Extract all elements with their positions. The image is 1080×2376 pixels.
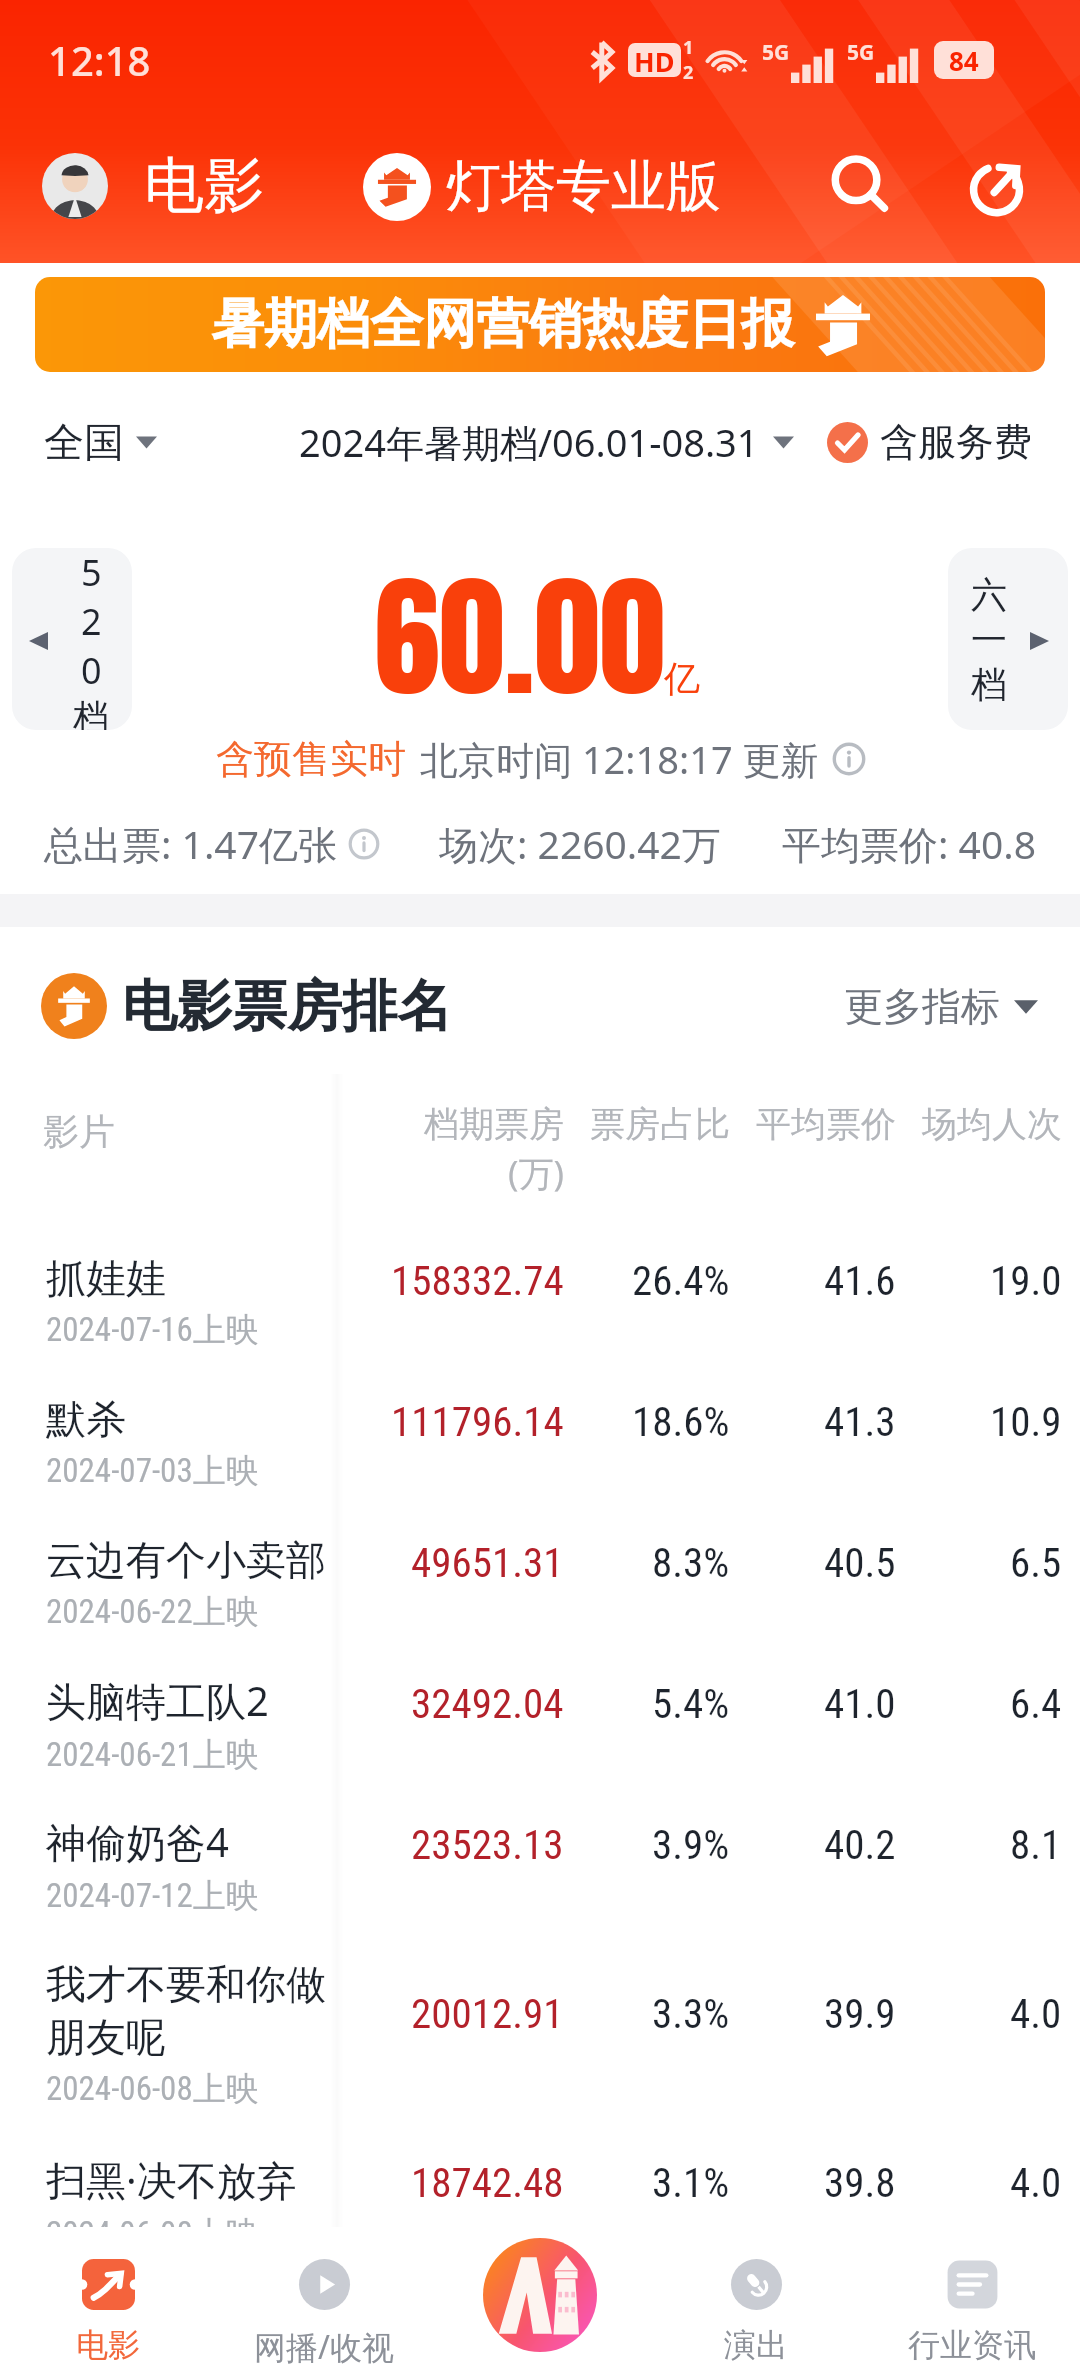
staticText: 60.00	[374, 538, 666, 737]
button[interactable]: 电影	[42, 142, 264, 230]
button[interactable]: 电影	[0, 2227, 216, 2376]
staticText: 18742.48	[411, 2159, 564, 2207]
staticText: 4.0	[1010, 2159, 1062, 2207]
staticText: 1	[683, 35, 694, 60]
button[interactable]: 暑期档全网营销热度日报	[35, 277, 1045, 372]
staticText: 41.6	[824, 1257, 896, 1305]
staticText: 暑期档全网营销热度日报	[211, 291, 794, 358]
button[interactable]: 默杀	[0, 1367, 1080, 1508]
staticText: 0	[81, 646, 102, 695]
staticText: 5G	[762, 38, 790, 67]
staticText: 总出票: 1.47亿张	[44, 817, 337, 870]
staticText: 10.9	[990, 1398, 1062, 1446]
staticText: 5G	[847, 38, 875, 67]
staticText: 电影	[76, 2325, 140, 2365]
staticText: 默杀	[46, 1394, 351, 1444]
staticText: 场次: 2260.42万	[439, 817, 721, 870]
staticText: 2024-06-22上映	[46, 1591, 259, 1633]
staticText: 19.0	[990, 1257, 1062, 1305]
button[interactable]: Search	[822, 147, 900, 225]
button[interactable]: 灯塔专业版	[363, 146, 721, 227]
staticText: 亿	[664, 656, 700, 701]
button[interactable]: 神偷奶爸4	[0, 1790, 1080, 1931]
button[interactable]: 含服务费	[827, 408, 1032, 476]
staticText: 39.8	[824, 2159, 896, 2207]
button[interactable]: 更多指标	[844, 972, 1038, 1041]
staticText: 扫黑·决不放弃	[46, 2152, 351, 2207]
staticText: 111796.14	[391, 1398, 564, 1446]
staticText: 平均票价	[756, 1102, 896, 1146]
staticText: 3.9%	[652, 1821, 730, 1869]
staticText: 2024-06-08上映	[46, 2213, 259, 2255]
staticText: 4.0	[1010, 1990, 1062, 2038]
staticText: 档	[73, 695, 109, 730]
button[interactable]: AI 助手	[483, 2238, 597, 2352]
staticText: 头脑特工队2	[46, 1673, 351, 1728]
staticText: 3.3%	[652, 1990, 730, 2038]
staticText: 档期票房 (万)	[424, 1102, 564, 1196]
staticText: 49651.31	[411, 1539, 564, 1587]
staticText: 平均票价: 40.8	[782, 817, 1036, 870]
staticText: 41.0	[824, 1680, 896, 1728]
button[interactable]: 2024年暑期档/06.01-08.31	[299, 406, 794, 478]
staticText: 3.1%	[652, 2159, 730, 2207]
staticText: 5	[81, 548, 102, 597]
button[interactable]: 我才不要和你做朋友呢	[0, 1931, 1080, 2128]
button[interactable]: 网播/收视	[216, 2227, 432, 2376]
staticText: 32492.04	[411, 1680, 564, 1728]
staticText: 2024-07-12上映	[46, 1875, 259, 1917]
staticText: 神偷奶爸4	[46, 1814, 351, 1869]
staticText: 行业资讯	[908, 2325, 1036, 2365]
button[interactable]: 行业资讯	[864, 2227, 1080, 2376]
staticText: 26.4%	[632, 1257, 730, 1305]
staticText: 灯塔专业版	[446, 152, 721, 221]
staticText: 41.3	[824, 1398, 896, 1446]
button[interactable]: 5	[12, 548, 132, 730]
staticText: 云边有个小卖部	[46, 1535, 351, 1585]
staticText: 2	[683, 60, 694, 85]
staticText: 5.4%	[652, 1680, 730, 1728]
button[interactable]: 六	[948, 548, 1068, 730]
button[interactable]: 头脑特工队2	[0, 1649, 1080, 1790]
staticText: 影片	[43, 1109, 115, 1154]
staticText: 档	[971, 662, 1007, 707]
staticText: 2024-06-21上映	[46, 1734, 259, 1776]
staticText: 12:18	[48, 33, 151, 87]
staticText: 北京时间 12:18:17 更新	[420, 733, 819, 785]
staticText: 2024年暑期档/06.01-08.31	[299, 416, 759, 468]
staticText: 含预售实时	[216, 735, 406, 783]
button[interactable]: 演出	[648, 2227, 864, 2376]
staticText: 6.4	[1010, 1680, 1062, 1728]
staticText: 电影票房排名	[122, 972, 452, 1041]
staticText: 场均人次	[922, 1102, 1062, 1146]
staticText: 2024-06-08上映	[46, 2068, 259, 2110]
staticText: 84	[949, 43, 979, 78]
button[interactable]: 扫黑·决不放弃	[0, 2128, 1080, 2269]
staticText: HD	[634, 43, 675, 77]
staticText: 2024-07-03上映	[46, 1450, 259, 1492]
staticText: 票房占比	[590, 1102, 730, 1146]
staticText: 2	[81, 597, 102, 646]
staticText: 一	[971, 617, 1007, 662]
staticText: 2024-07-16上映	[46, 1309, 259, 1351]
button[interactable]: 全国	[44, 407, 157, 477]
button[interactable]: Share	[960, 147, 1038, 225]
staticText: 39.9	[824, 1990, 896, 2038]
staticText: 更多指标	[844, 982, 1000, 1031]
staticText: 158332.74	[391, 1257, 564, 1305]
staticText: 40.2	[824, 1821, 896, 1869]
staticText: 40.5	[824, 1539, 896, 1587]
staticText: 23523.13	[411, 1821, 564, 1869]
staticText: 18.6%	[632, 1398, 730, 1446]
staticText: 20012.91	[411, 1990, 564, 2038]
staticText: 电影	[144, 148, 264, 224]
staticText: 演出	[724, 2325, 788, 2365]
staticText: 抓娃娃	[46, 1253, 351, 1303]
staticText: 8.3%	[652, 1539, 730, 1587]
staticText: 含服务费	[880, 418, 1032, 466]
button[interactable]: 云边有个小卖部	[0, 1508, 1080, 1649]
staticText: 6.5	[1010, 1539, 1062, 1587]
staticText: 全国	[44, 417, 124, 467]
button[interactable]: 抓娃娃	[0, 1226, 1080, 1367]
staticText: 网播/收视	[254, 2325, 394, 2369]
